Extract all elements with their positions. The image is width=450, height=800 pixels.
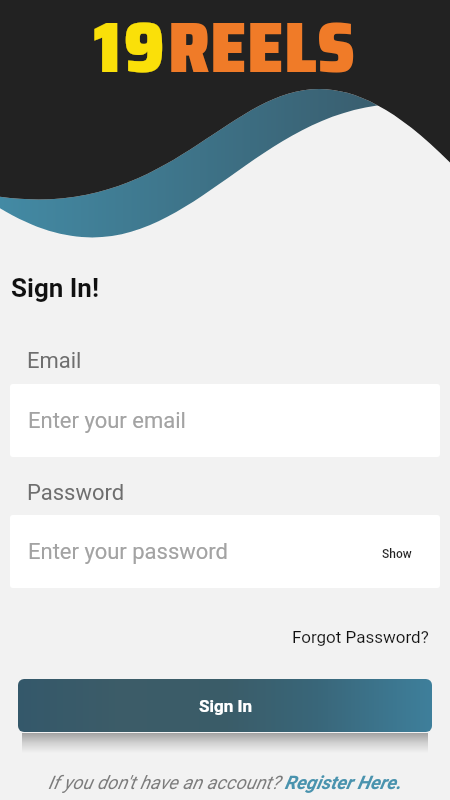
staticText: Enter your password [28, 539, 229, 565]
staticText: Sign In [199, 696, 252, 716]
button[interactable]: If you don't have an account? Register H… [0, 760, 450, 800]
button[interactable]: Show [354, 539, 440, 569]
staticText: Sign In! [11, 273, 99, 303]
button[interactable]: Sign In [18, 679, 432, 732]
staticText: If you don't have an account? Register H… [48, 772, 402, 794]
staticText: Enter your email [28, 408, 186, 434]
staticText: Password [27, 480, 125, 506]
staticText: Email [27, 348, 82, 374]
button[interactable]: Enter your email [10, 384, 440, 457]
button[interactable]: Forgot Password? [292, 627, 450, 647]
button[interactable]: Enter your password [10, 515, 440, 588]
staticText: Show [382, 547, 412, 561]
staticText: 19REELS [94, 0, 356, 90]
